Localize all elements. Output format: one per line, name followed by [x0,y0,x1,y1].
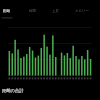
staticText: カロリー [75,9,89,13]
button[interactable]: 時間 [25,6,39,16]
staticText: 上昇 [52,9,59,13]
staticText: 距離の合計 [2,88,24,93]
button[interactable]: カロリー [72,6,91,16]
button[interactable]: 上昇 [48,6,62,16]
button[interactable]: 距離 [0,6,13,16]
staticText: 距離 [3,9,10,13]
staticText: 時間 [29,9,36,13]
